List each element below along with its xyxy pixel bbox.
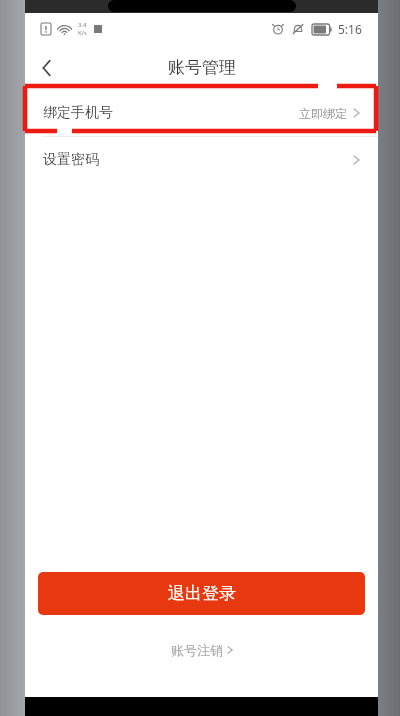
staticText: 账号管理: [168, 57, 236, 78]
staticText: 3.4: [78, 21, 87, 29]
staticText: 5:16: [338, 21, 362, 37]
button[interactable]: 返回: [25, 46, 69, 90]
staticText: 立即绑定: [299, 106, 347, 121]
button[interactable]: 绑定手机号: [25, 90, 378, 136]
button[interactable]: 退出登录: [38, 572, 365, 615]
button[interactable]: 账号注销: [159, 637, 245, 663]
staticText: 退出登录: [168, 583, 236, 604]
staticText: 账号注销: [171, 642, 223, 658]
staticText: 绑定手机号: [43, 104, 113, 122]
staticText: 设置密码: [43, 151, 99, 169]
staticText: K/s: [78, 29, 87, 37]
button[interactable]: 设置密码: [25, 137, 378, 183]
